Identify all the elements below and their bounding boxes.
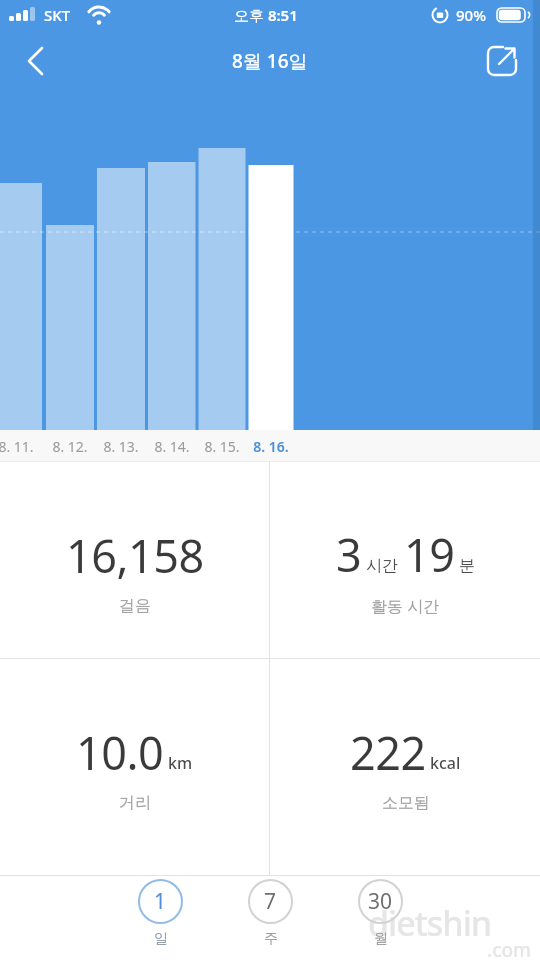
staticText: 3 (336, 524, 362, 585)
staticText: 8. 11. (0, 437, 37, 456)
staticText: 8. 15. (201, 437, 243, 456)
staticText: 오후 8:51 (234, 5, 298, 25)
staticText: SKT (44, 5, 71, 25)
staticText: 1 (154, 887, 167, 916)
staticText: 30 (368, 887, 393, 916)
staticText: 8. 13. (100, 437, 142, 456)
staticText: .com (487, 937, 532, 960)
staticText: 거리 (119, 793, 151, 813)
staticText: 10.0 (76, 722, 164, 783)
staticText: 16,158 (66, 525, 204, 586)
staticText: 걸음 (119, 596, 151, 616)
staticText: 활동 시간 (371, 595, 440, 617)
staticText: kcal (430, 752, 461, 774)
staticText: 월 (374, 930, 388, 948)
staticText: 소모됨 (382, 793, 430, 813)
staticText: km (168, 752, 193, 774)
staticText: 222 (350, 722, 426, 783)
staticText: 8. 16. (250, 437, 292, 456)
staticText: dietshin (368, 900, 492, 946)
staticText: 90% (456, 5, 486, 25)
staticText: 8월 16일 (232, 48, 308, 74)
staticText: 시간 (366, 556, 398, 576)
staticText: 8. 14. (151, 437, 193, 456)
staticText: 주 (264, 930, 278, 948)
staticText: 19 (404, 524, 455, 585)
staticText: 7 (264, 887, 277, 916)
staticText: 일 (154, 930, 168, 948)
staticText: 8. 12. (49, 437, 91, 456)
staticText: 분 (459, 556, 475, 576)
